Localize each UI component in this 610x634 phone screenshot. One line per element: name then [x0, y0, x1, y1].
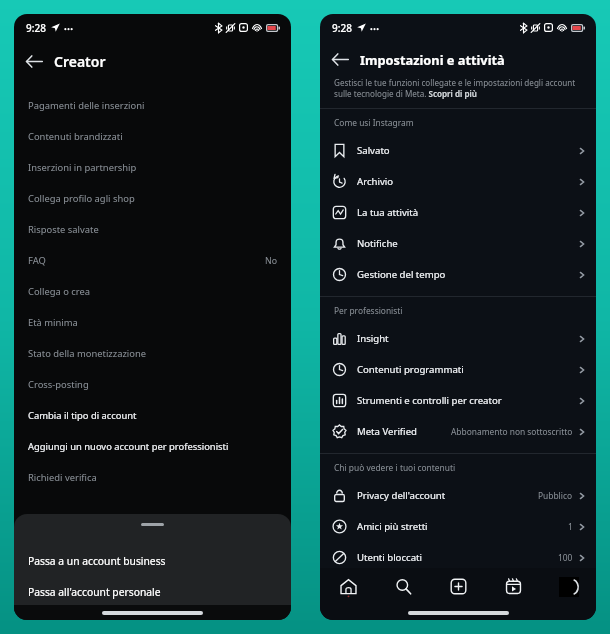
button[interactable]: Utenti bloccati — [320, 542, 596, 573]
staticText: La tua attività — [357, 206, 419, 219]
staticText: Creator — [54, 52, 106, 71]
staticText: Cambia il tipo di account — [28, 409, 137, 422]
button[interactable]: Collega profilo agli shop — [14, 183, 291, 214]
button[interactable]: Cerca — [376, 568, 431, 605]
staticText: 9:28 — [332, 21, 352, 35]
staticText: Abbonamento non sottoscritto — [451, 426, 573, 437]
staticText: 9:28 — [26, 21, 46, 35]
staticText: Aggiungi un nuovo account per profession… — [28, 440, 229, 453]
staticText: Insight — [357, 332, 389, 345]
staticText: 1 — [568, 521, 573, 532]
staticText: Gestisci le tue funzioni collegate e le … — [334, 77, 585, 99]
button[interactable]: Meta Verified — [320, 416, 596, 447]
staticText: Strumenti e controlli per creator — [357, 394, 502, 407]
button[interactable]: Archivio — [320, 166, 596, 197]
button[interactable]: Età minima — [14, 307, 291, 338]
staticText: Richiedi verifica — [28, 471, 97, 484]
staticText: Pagamenti delle inserzioni — [28, 99, 145, 112]
staticText: 100 — [558, 552, 573, 563]
staticText: Gestione del tempo — [357, 268, 446, 281]
button[interactable]: Indietro — [320, 41, 360, 77]
button[interactable]: Pagamenti delle inserzioni — [14, 90, 291, 121]
button[interactable]: Aggiungi un nuovo account per profession… — [14, 431, 291, 462]
staticText: Pubblico — [538, 490, 573, 501]
staticText: Collega profilo agli shop — [28, 192, 135, 205]
button[interactable]: Contenuti programmati — [320, 354, 596, 385]
staticText: Passa all'account personale — [28, 585, 161, 599]
staticText: Chi può vedere i tuoi contenuti — [334, 462, 456, 473]
button[interactable]: Cross-posting — [14, 369, 291, 400]
staticText: Impostazioni e attività — [360, 51, 505, 68]
staticText: Risposte salvate — [28, 223, 99, 236]
button[interactable]: Strumenti e controlli per creator — [320, 385, 596, 416]
staticText: Come usi Instagram — [334, 117, 414, 128]
button[interactable]: Risposte salvate — [14, 214, 291, 245]
button[interactable]: Stato della monetizzazione — [14, 338, 291, 369]
button[interactable]: Contenuti brandizzati — [14, 121, 291, 152]
button[interactable]: Crea — [431, 568, 486, 605]
staticText: Amici più stretti — [357, 520, 428, 533]
button[interactable]: Richiedi verifica — [14, 462, 291, 493]
button[interactable]: Reels — [486, 568, 541, 605]
staticText: Utenti bloccati — [357, 551, 422, 564]
staticText: Stato della monetizzazione — [28, 347, 147, 360]
staticText: Meta Verified — [357, 425, 417, 438]
staticText: Passa a un account business — [28, 554, 166, 568]
button[interactable]: Salvato — [320, 135, 596, 166]
staticText: Contenuti programmati — [357, 363, 464, 376]
button[interactable]: Gestione del tempo — [320, 259, 596, 290]
button[interactable]: Indietro — [14, 41, 54, 81]
button[interactable]: Amici più stretti — [320, 511, 596, 542]
staticText: Collega o crea — [28, 285, 91, 298]
button[interactable]: Cambia il tipo di account — [14, 400, 291, 431]
staticText: Cross-posting — [28, 378, 89, 391]
button[interactable]: Privacy dell'account — [320, 480, 596, 511]
staticText: Notifiche — [357, 237, 398, 250]
staticText: Per professionisti — [334, 305, 403, 316]
button[interactable]: Insight — [320, 323, 596, 354]
staticText: Inserzioni in partnership — [28, 161, 137, 174]
button[interactable]: Passa a un account business — [14, 545, 291, 576]
staticText: Età minima — [28, 316, 78, 329]
button[interactable]: Notifiche — [320, 228, 596, 259]
button[interactable]: Home — [320, 568, 376, 605]
button[interactable]: Passa all'account personale — [14, 576, 291, 607]
staticText: Archivio — [357, 175, 394, 188]
button[interactable]: Inserzioni in partnership — [14, 152, 291, 183]
button[interactable]: Profilo — [559, 577, 579, 597]
button[interactable]: Collega o crea — [14, 276, 291, 307]
staticText: Salvato — [357, 144, 390, 157]
button[interactable]: La tua attività — [320, 197, 596, 228]
staticText: Contenuti brandizzati — [28, 130, 123, 143]
staticText: Privacy dell'account — [357, 489, 446, 502]
staticText: FAQ — [28, 254, 46, 267]
button[interactable]: FAQ — [14, 245, 291, 276]
staticText: No — [265, 255, 278, 267]
